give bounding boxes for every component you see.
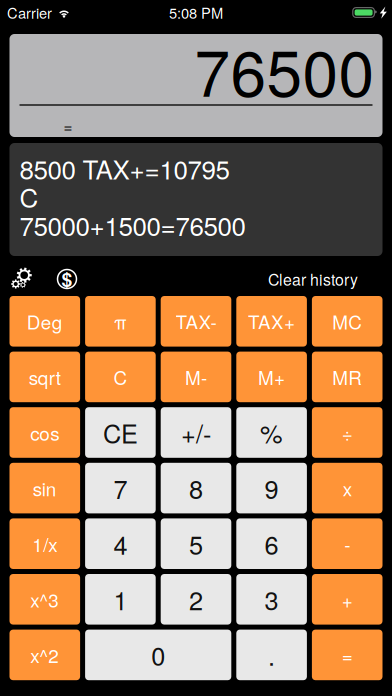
staticText: . [268, 637, 275, 673]
button[interactable]: ÷ [312, 407, 382, 458]
staticText: 7 [113, 470, 127, 506]
button[interactable]: MR [312, 352, 382, 402]
staticText: - [344, 530, 350, 557]
staticText: 5 [189, 526, 203, 562]
staticText: MR [332, 363, 362, 390]
button[interactable]: Settings [7, 264, 41, 294]
button[interactable]: x [312, 463, 382, 513]
staticText: % [260, 414, 283, 451]
staticText: 76500 [194, 23, 374, 115]
button[interactable]: x^2 [9, 630, 80, 680]
staticText: 3 [265, 581, 279, 617]
staticText: 75000+1500=76500 [19, 206, 245, 243]
staticText: 6 [265, 526, 279, 562]
button[interactable]: + [312, 574, 382, 625]
button[interactable]: sin [9, 463, 80, 513]
staticText: x [343, 474, 352, 502]
staticText: 1/x [32, 530, 57, 557]
button[interactable]: Currency [52, 264, 82, 294]
button[interactable]: C [85, 352, 156, 402]
staticText: MC [332, 308, 362, 335]
button[interactable]: M+ [236, 352, 307, 402]
staticText: 4 [113, 526, 127, 562]
staticText: ÷ [342, 419, 353, 446]
staticText: 5:08 PM [169, 2, 223, 23]
staticText: = [63, 115, 72, 137]
staticText: Deg [27, 308, 63, 335]
button[interactable]: sqrt [9, 352, 80, 402]
staticText: x^3 [30, 586, 59, 613]
staticText: 1 [113, 581, 127, 617]
staticText: C [113, 363, 127, 390]
button[interactable]: M- [161, 352, 231, 402]
button[interactable]: - [312, 518, 382, 569]
button[interactable]: 0 [85, 630, 231, 680]
staticText: x^2 [30, 641, 59, 668]
button[interactable]: Clear history [268, 264, 358, 294]
button[interactable]: TAX- [161, 296, 231, 347]
staticText: $ [61, 265, 72, 293]
button[interactable]: 5 [161, 518, 231, 569]
button[interactable]: = [312, 630, 382, 680]
button[interactable]: Deg [9, 296, 80, 347]
staticText: 8500 TAX+=10795 [19, 149, 229, 187]
button[interactable]: 1/x [9, 518, 80, 569]
button[interactable]: cos [9, 407, 80, 458]
button[interactable]: CE [85, 407, 156, 458]
button[interactable]: 8 [161, 463, 231, 513]
button[interactable]: 4 [85, 518, 156, 569]
staticText: TAX- [175, 308, 216, 335]
staticText: π [114, 308, 127, 335]
staticText: 8 [189, 470, 203, 506]
staticText: M+ [258, 363, 285, 390]
staticText: M- [185, 363, 207, 390]
button[interactable]: 2 [161, 574, 231, 625]
button[interactable]: . [236, 630, 307, 680]
staticText: Clear history [268, 268, 358, 290]
staticText: = [342, 641, 353, 668]
button[interactable]: +/- [161, 407, 231, 458]
button[interactable]: MC [312, 296, 382, 347]
button[interactable]: 9 [236, 463, 307, 513]
staticText: 9 [265, 470, 279, 506]
staticText: cos [30, 419, 59, 446]
button[interactable]: π [85, 296, 156, 347]
staticText: 2 [189, 581, 203, 617]
button[interactable]: x^3 [9, 574, 80, 625]
staticText: sqrt [29, 363, 61, 390]
staticText: 0 [151, 637, 165, 673]
staticText: sin [33, 474, 57, 502]
button[interactable]: TAX+ [236, 296, 307, 347]
staticText: +/- [181, 414, 211, 451]
button[interactable]: 7 [85, 463, 156, 513]
button[interactable]: 1 [85, 574, 156, 625]
staticText: C [19, 178, 38, 215]
staticText: CE [103, 414, 138, 451]
button[interactable]: 3 [236, 574, 307, 625]
staticText: Carrier [7, 2, 52, 23]
staticText: + [342, 586, 353, 613]
staticText: TAX+ [248, 308, 295, 335]
button[interactable]: 6 [236, 518, 307, 569]
button[interactable]: % [236, 407, 307, 458]
